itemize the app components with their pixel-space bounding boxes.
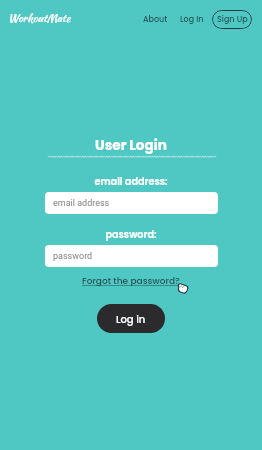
staticText: password: [53, 251, 93, 262]
staticText: password:: [105, 228, 157, 242]
staticText: Sign Up: [217, 14, 248, 25]
button[interactable]: Log In: [176, 11, 208, 28]
staticText: Log in: [116, 312, 146, 326]
button[interactable]: Log in: [97, 304, 165, 333]
staticText: WorkoutMate: [8, 10, 71, 26]
staticText: email address: [53, 198, 110, 209]
staticText: User Login: [95, 136, 167, 155]
staticText: Log In: [180, 14, 204, 25]
other: Pointer: [177, 281, 190, 294]
staticText: About: [143, 14, 168, 25]
button[interactable]: About: [139, 11, 172, 28]
button[interactable]: email address: [45, 192, 218, 214]
staticText: Forgot the password?: [82, 275, 180, 288]
button[interactable]: Sign Up: [212, 10, 252, 29]
staticText: email address:: [94, 175, 168, 189]
button[interactable]: password: [45, 245, 218, 267]
button[interactable]: Forgot the password?: [82, 275, 180, 288]
button[interactable]: WorkoutMate: [8, 10, 71, 26]
